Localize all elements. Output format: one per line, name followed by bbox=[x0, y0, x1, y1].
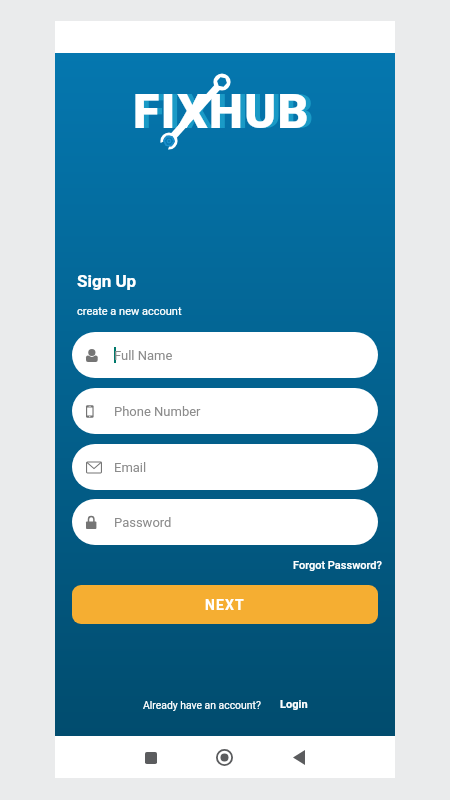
button[interactable]: Home bbox=[207, 740, 242, 775]
staticText: Forgot Password? bbox=[293, 559, 382, 572]
staticText: FIXHUB bbox=[133, 83, 310, 139]
button[interactable]: Password bbox=[72, 499, 378, 545]
button[interactable]: Recent apps bbox=[133, 740, 168, 775]
button[interactable]: NEXT bbox=[72, 585, 378, 624]
button[interactable]: Full Name bbox=[72, 332, 378, 378]
staticText: Already have an account? bbox=[143, 699, 261, 711]
staticText: Email bbox=[114, 460, 147, 475]
staticText: NEXT bbox=[205, 597, 245, 613]
staticText: Full Name bbox=[114, 348, 173, 363]
staticText: Sign Up bbox=[77, 271, 137, 291]
button[interactable]: Forgot Password? bbox=[290, 556, 385, 575]
button[interactable]: Login bbox=[280, 698, 308, 711]
staticText: FIXHUB bbox=[138, 83, 315, 139]
button[interactable]: Email bbox=[72, 444, 378, 490]
button[interactable]: Back bbox=[281, 740, 316, 775]
staticText: Password bbox=[114, 515, 172, 530]
staticText: Phone Number bbox=[114, 404, 201, 419]
staticText: Login bbox=[280, 698, 308, 711]
button[interactable]: Phone Number bbox=[72, 388, 378, 434]
staticText: create a new account bbox=[77, 305, 182, 318]
